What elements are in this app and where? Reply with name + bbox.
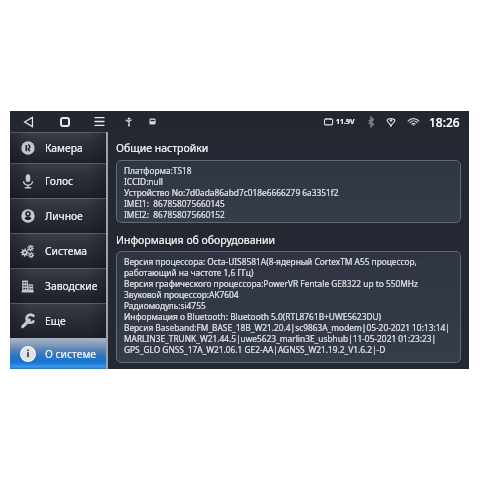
staticText: Личное xyxy=(45,209,83,223)
staticText: работающий на частоте 1,6 ГГц) xyxy=(124,267,254,278)
button[interactable]: Система xyxy=(10,233,106,268)
staticText: IMEI1: 867858075660145 xyxy=(124,198,225,209)
button[interactable]: Home xyxy=(47,111,83,132)
button[interactable]: Камера xyxy=(10,132,106,163)
staticText: Еще xyxy=(45,314,66,328)
staticText: Платформа:TS18 xyxy=(124,165,192,176)
staticText: Общие настройки xyxy=(116,141,209,155)
staticText: Система xyxy=(45,244,88,258)
staticText: MARLIN3E_TRUNK_W21.44.5|uwe5623_marlin3E… xyxy=(124,333,437,344)
staticText: IMEI2: 867858075660152 xyxy=(124,209,225,220)
button[interactable]: Заводские xyxy=(10,268,106,303)
button[interactable]: Menu xyxy=(83,111,116,132)
staticText: GPS_GLO GNSS_17A_W21.06.1 GE2-AA|AGNSS_W… xyxy=(124,344,386,355)
button[interactable]: Back xyxy=(10,111,47,132)
staticText: Радиомодуль:si4755 xyxy=(124,300,206,311)
staticText: Звуковой процессор:AK7604 xyxy=(124,289,239,300)
staticText: 18:26 xyxy=(429,114,460,130)
staticText: Версия Baseband:FM_BASE_18B_W21.20.4|sc9… xyxy=(124,322,450,333)
staticText: ICCID:null xyxy=(124,176,163,187)
staticText: Информация об оборудовании xyxy=(116,233,276,247)
staticText: Голос xyxy=(45,174,74,188)
staticText: Информация о Bluetooth: Bluetooth 5.0(RT… xyxy=(124,311,382,322)
staticText: О системе xyxy=(45,347,97,361)
staticText: Устройство No:7d0ada86abd7c018e6666279 6… xyxy=(124,187,339,198)
staticText: Версия графического процессора:PowerVR F… xyxy=(124,278,418,289)
staticText: Заводские xyxy=(45,279,98,293)
button[interactable]: Еще xyxy=(10,303,106,338)
staticText: 11.9V xyxy=(336,117,355,127)
staticText: Камера xyxy=(45,141,83,155)
button[interactable]: Голос xyxy=(10,163,106,198)
button[interactable]: Личное xyxy=(10,198,106,233)
staticText: Версия процессора: Octa-UIS8581A(8-ядерн… xyxy=(124,256,417,267)
button[interactable]: О системе xyxy=(10,338,106,369)
